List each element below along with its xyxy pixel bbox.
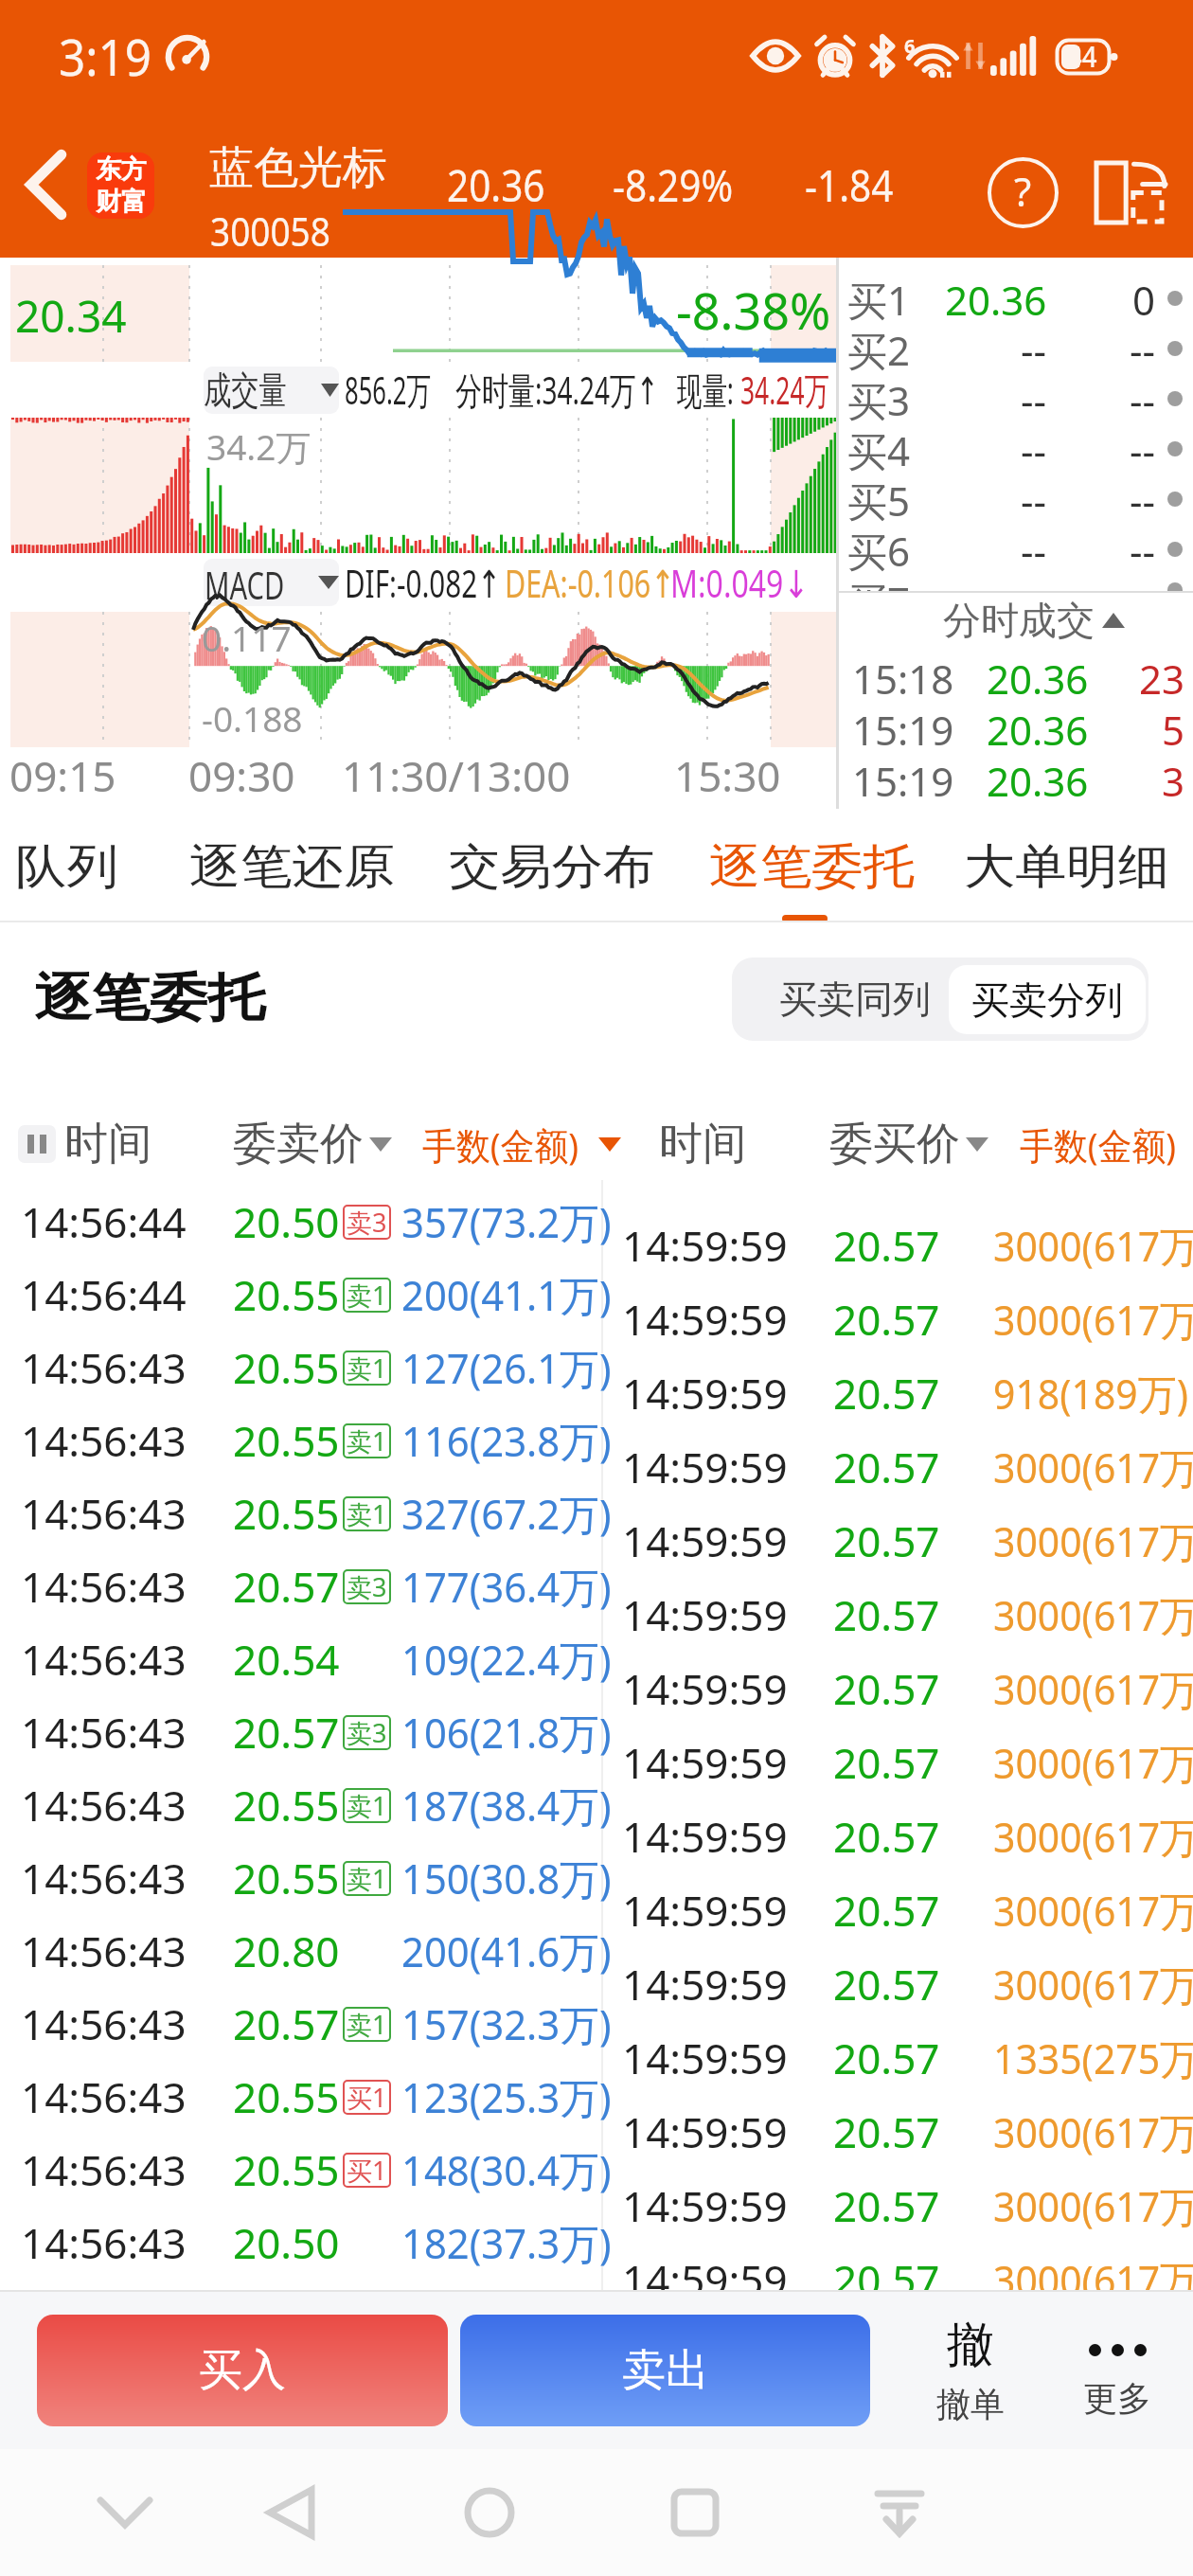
button[interactable]: 分时成交 bbox=[839, 593, 1193, 648]
button[interactable]: 14:56:43 bbox=[0, 1404, 603, 1476]
button[interactable]: 14:59:59 bbox=[603, 1799, 1193, 1873]
button[interactable]: 买卖分列 bbox=[949, 965, 1146, 1034]
staticText: 14:56:43 bbox=[21, 1704, 187, 1761]
button[interactable]: 交易分布 bbox=[437, 809, 661, 922]
staticText: -- bbox=[1130, 524, 1156, 574]
button[interactable]: Split screen bbox=[1079, 140, 1180, 244]
button[interactable]: 14:56:43 bbox=[0, 1331, 603, 1404]
staticText: 327(67.2万) bbox=[401, 1485, 612, 1542]
button[interactable]: 15:18 bbox=[839, 652, 1193, 703]
button[interactable]: Recents bbox=[638, 2456, 752, 2569]
button[interactable]: 14:59:59 bbox=[603, 1430, 1193, 1504]
button[interactable]: 14:59:59 bbox=[603, 2095, 1193, 2169]
staticText: 14:56:43 bbox=[21, 1339, 187, 1396]
staticText: 分时量:34.24万↑ bbox=[455, 364, 659, 416]
button[interactable]: 买2 bbox=[839, 323, 1193, 373]
staticText: 5 bbox=[1162, 703, 1185, 754]
button[interactable]: 成交量 bbox=[204, 367, 339, 414]
staticText: 手数(金额) bbox=[422, 1119, 579, 1170]
button[interactable]: 14:56:43 bbox=[0, 1476, 603, 1549]
staticText: 20.55 bbox=[233, 1850, 340, 1906]
staticText: 177(36.4万) bbox=[401, 1558, 612, 1615]
button[interactable]: Back bbox=[0, 112, 91, 258]
staticText: 卖1 bbox=[347, 1423, 387, 1458]
button[interactable]: 14:59:59 bbox=[603, 1947, 1193, 2021]
staticText: 14:56:44 bbox=[21, 1193, 187, 1250]
button[interactable]: Hide keyboard bbox=[68, 2456, 182, 2569]
button[interactable]: 14:56:43 bbox=[0, 1987, 603, 2060]
button[interactable]: 买3 bbox=[839, 373, 1193, 423]
button[interactable]: Home bbox=[433, 2456, 546, 2569]
button[interactable]: 更多 bbox=[1051, 2307, 1184, 2434]
staticText: 106(21.8万) bbox=[401, 1704, 612, 1761]
button[interactable]: 14:56:43 bbox=[0, 1841, 603, 1914]
staticText: 3000(617万) bbox=[993, 1512, 1193, 1569]
button[interactable]: 14:59:59 bbox=[603, 1282, 1193, 1356]
button[interactable]: Scroll to bottom bbox=[843, 2456, 956, 2569]
button[interactable]: 14:56:44 bbox=[0, 1258, 603, 1331]
staticText: 3 bbox=[1162, 754, 1185, 805]
staticText: 卖1 bbox=[347, 2007, 387, 2042]
button[interactable]: East Money bbox=[87, 152, 154, 219]
staticText: 09:15 bbox=[9, 747, 116, 802]
button[interactable]: 买4 bbox=[839, 423, 1193, 474]
button[interactable]: 14:59:59 bbox=[603, 1356, 1193, 1430]
button[interactable]: 14:56:43 bbox=[0, 1695, 603, 1768]
button[interactable]: 14:56:43 bbox=[0, 1768, 603, 1841]
button[interactable]: 14:59:59 bbox=[603, 1578, 1193, 1652]
button[interactable]: MACD bbox=[204, 559, 339, 606]
staticText: 15:18 bbox=[852, 652, 954, 703]
button[interactable]: 买7 bbox=[839, 574, 1193, 591]
button[interactable]: 14:59:59 bbox=[603, 2243, 1193, 2290]
button[interactable]: 14:56:43 bbox=[0, 2206, 603, 2279]
button[interactable]: 逐笔委托 bbox=[698, 809, 921, 922]
staticText: 123(25.3万) bbox=[401, 2068, 612, 2125]
staticText: 20.57 bbox=[833, 2030, 940, 2086]
button[interactable]: 买6 bbox=[839, 524, 1193, 574]
staticText: 23 bbox=[1139, 652, 1185, 703]
staticText: 14:59:59 bbox=[622, 1217, 788, 1274]
button[interactable]: 14:56:43 bbox=[0, 1914, 603, 1987]
button[interactable]: 14:56:43 bbox=[0, 2133, 603, 2206]
button[interactable]: Help bbox=[970, 140, 1075, 244]
staticText: 20.55 bbox=[233, 1266, 340, 1323]
button[interactable]: Back bbox=[233, 2456, 347, 2569]
button[interactable]: 买入 bbox=[37, 2315, 448, 2426]
button[interactable]: 14:59:59 bbox=[603, 2021, 1193, 2095]
button[interactable]: 15:19 bbox=[839, 754, 1193, 805]
staticText: 买卖同列 bbox=[779, 975, 931, 1023]
button[interactable]: 15:19 bbox=[839, 703, 1193, 754]
button[interactable]: 买1 bbox=[839, 273, 1193, 323]
staticText: 20.57 bbox=[833, 1660, 940, 1717]
button[interactable]: 14:56:43 bbox=[0, 1549, 603, 1622]
staticText: 委卖价 bbox=[233, 1117, 364, 1172]
button[interactable]: 撤 bbox=[904, 2307, 1037, 2434]
button[interactable]: 买卖同列 bbox=[760, 957, 950, 1041]
button[interactable]: 买5 bbox=[839, 474, 1193, 524]
staticText: 14:59:59 bbox=[622, 1291, 788, 1348]
button[interactable]: 14:59:59 bbox=[603, 1652, 1193, 1726]
staticText: 20.34 bbox=[15, 286, 127, 346]
button[interactable]: 大单明细 bbox=[953, 809, 1176, 922]
button[interactable]: 队列 bbox=[4, 809, 150, 922]
button[interactable]: 14:56:44 bbox=[0, 1185, 603, 1258]
button[interactable]: 14:59:59 bbox=[603, 2169, 1193, 2243]
staticText: 14:56:43 bbox=[21, 2068, 187, 2125]
button[interactable]: 14:59:59 bbox=[603, 1873, 1193, 1947]
button[interactable]: 14:59:59 bbox=[603, 1208, 1193, 1282]
button[interactable]: 14:59:59 bbox=[603, 1726, 1193, 1799]
button[interactable]: 逐笔还原 bbox=[178, 809, 401, 922]
staticText: 买6 bbox=[847, 524, 911, 574]
staticText: -- bbox=[1130, 423, 1156, 474]
staticText: 3000(617万) bbox=[993, 1217, 1193, 1274]
button[interactable]: 14:59:59 bbox=[603, 1504, 1193, 1578]
button[interactable]: 14:56:43 bbox=[0, 1622, 603, 1695]
staticText: 逐笔委托 bbox=[709, 837, 915, 897]
button[interactable]: 卖出 bbox=[460, 2315, 870, 2426]
button[interactable]: Pause bbox=[18, 1125, 56, 1163]
button[interactable]: 14:56:43 bbox=[0, 2060, 603, 2133]
staticText: 20.57 bbox=[833, 1882, 940, 1939]
staticText: 20.55 bbox=[233, 1485, 340, 1542]
staticText: 116(23.8万) bbox=[401, 1412, 612, 1469]
